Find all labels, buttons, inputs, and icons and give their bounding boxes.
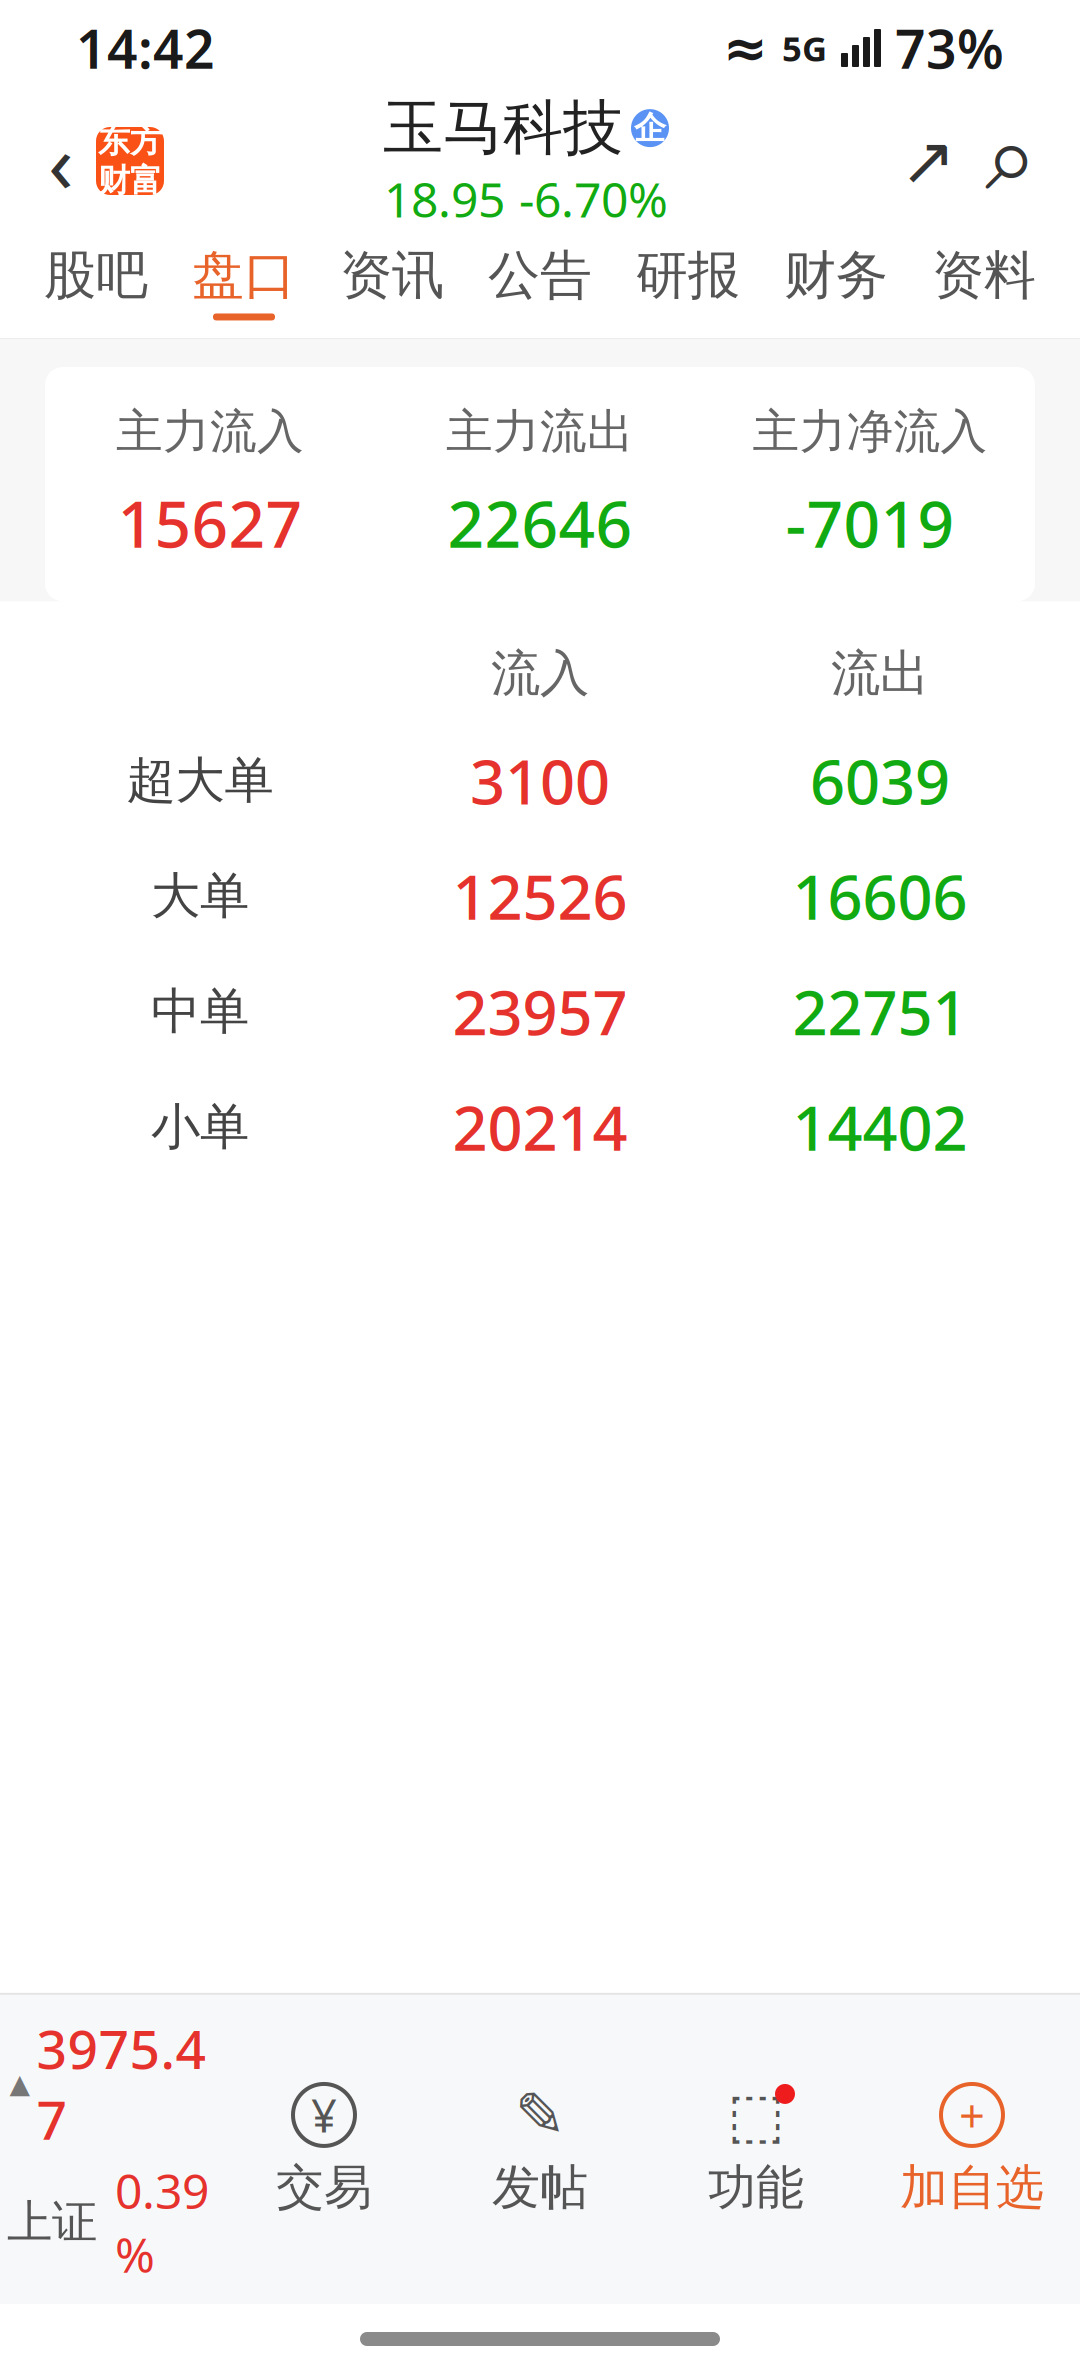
button[interactable]: 20日净流入 (547, 1894, 785, 2109)
staticText: ⬚ (727, 2080, 785, 2150)
staticText: 加自选 (900, 2158, 1044, 2217)
staticText: ¥ (311, 2085, 337, 2145)
button[interactable]: 分享 (888, 116, 968, 206)
staticText: ≈ (723, 18, 768, 78)
staticText: 3100 (470, 740, 610, 821)
staticText: 企 (634, 108, 666, 148)
staticText: 主力净流出 (379, 2153, 619, 2212)
staticText: 主力净流入 (71, 2153, 311, 2212)
staticText: ▲ (9, 2069, 30, 2099)
button[interactable]: 返回 (26, 106, 96, 216)
staticText: 超大单 (126, 750, 273, 811)
staticText: 20214 (452, 1086, 627, 1168)
staticText: 12526 (452, 855, 627, 937)
staticText: 23957 (452, 971, 627, 1052)
button[interactable]: ✎ (432, 2082, 648, 2217)
staticText: ↗ (900, 123, 956, 199)
staticText: 小单 (151, 1097, 249, 1157)
staticText: 资料 (932, 244, 1036, 307)
staticText: 公告 (488, 244, 592, 307)
button[interactable]: 公告 (466, 230, 614, 334)
staticText: ⌕ (985, 115, 1037, 206)
button[interactable]: ¥ (216, 2082, 432, 2217)
staticText: 盘口 (192, 244, 296, 307)
staticText: 发帖 (492, 2158, 588, 2217)
staticText: + (959, 2085, 985, 2145)
staticText: 主力流入 (116, 403, 304, 460)
button[interactable]: 60日净流入 (799, 1894, 1037, 2109)
staticText: 18.95 (384, 167, 505, 231)
staticText: 5G (782, 25, 827, 71)
staticText: 中单 (151, 981, 249, 1042)
staticText: 主力净流入 (752, 403, 987, 460)
staticText: 22646 (447, 480, 632, 565)
staticText: 14402 (792, 1086, 967, 1168)
staticText: ✎ (514, 2080, 565, 2150)
staticText: 0.39% (115, 2158, 209, 2286)
staticText: 6039 (810, 740, 950, 821)
button[interactable]: + (864, 2082, 1080, 2217)
staticText: 流出 (831, 643, 929, 704)
staticText: 交易 (276, 2158, 372, 2217)
staticText: 16606 (792, 855, 967, 937)
button[interactable]: 东方财富 (96, 127, 164, 195)
staticText: 3975.47 (36, 2013, 206, 2154)
staticText: 14:42 (76, 13, 215, 83)
staticText: 15627 (117, 480, 302, 565)
button[interactable]: ▲ (0, 2013, 216, 2286)
staticText: 玉马科技 (383, 91, 623, 165)
button[interactable]: 资料 (910, 230, 1058, 334)
staticText: 流入 (491, 643, 589, 704)
button[interactable]: 财务 (762, 230, 910, 334)
staticText: 73% (895, 13, 1004, 83)
button[interactable]: 5日净流入 (295, 1894, 533, 2109)
staticText: ‹ (48, 106, 74, 216)
staticText: 资讯 (340, 244, 444, 307)
button[interactable]: 股吧 (22, 230, 170, 334)
button[interactable]: 当日净流入 (43, 1897, 281, 2107)
staticText: 财务 (784, 244, 888, 307)
button[interactable]: 研报 (614, 230, 762, 334)
staticText: -6.70% (519, 167, 668, 231)
staticText: 主力流出 (446, 403, 634, 460)
staticText: 东方 (98, 122, 162, 161)
button[interactable]: ⬚ (648, 2082, 864, 2217)
staticText: 股价 (697, 2153, 793, 2212)
button[interactable]: 资讯 (318, 230, 466, 334)
staticText: 22751 (792, 971, 967, 1052)
button[interactable]: 盘口 (170, 230, 318, 334)
staticText: -7019 (785, 480, 954, 565)
staticText: 大单 (151, 866, 249, 926)
staticText: 上证 (7, 2194, 97, 2250)
staticText: -7019 (84, 1999, 239, 2076)
staticText: 股吧 (44, 244, 148, 307)
staticText: 功能 (708, 2158, 804, 2217)
button[interactable]: 搜索 (968, 116, 1054, 206)
staticText: 研报 (636, 244, 740, 307)
staticText: 财富 (98, 161, 162, 200)
